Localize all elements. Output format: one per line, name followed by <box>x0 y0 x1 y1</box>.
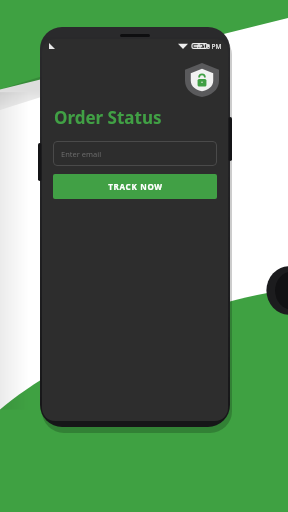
staticText: Enter email <box>61 149 102 159</box>
button[interactable]: TRACK NOW <box>53 174 217 199</box>
button[interactable]: Enter email <box>53 141 217 166</box>
staticText: TRACK NOW <box>108 181 163 192</box>
other: Security <box>185 63 219 97</box>
staticText: 6:10 PM <box>197 42 222 51</box>
staticText: Order Status <box>54 106 162 129</box>
